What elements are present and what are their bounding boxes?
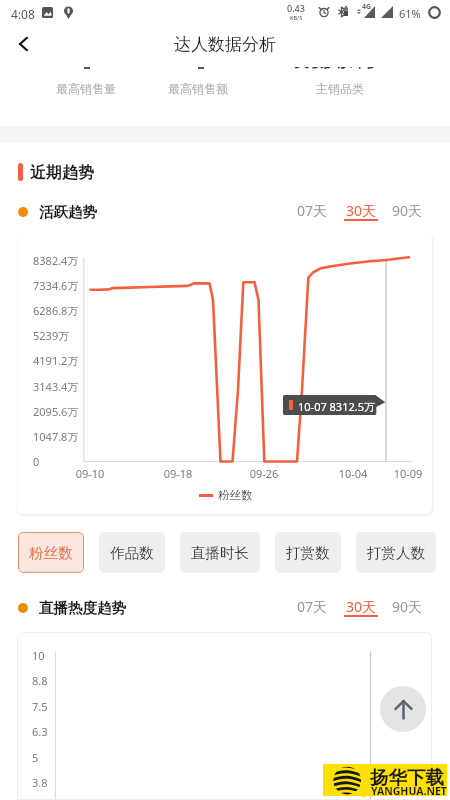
- staticText: 扬华下载: [370, 766, 444, 789]
- staticText: 10: [32, 648, 45, 663]
- staticText: 粉丝数: [29, 544, 73, 562]
- button[interactable]: 打赏人数: [356, 532, 436, 573]
- staticText: 07天: [297, 597, 328, 616]
- staticText: 作品数: [110, 544, 154, 562]
- staticText: 10-04: [328, 466, 378, 481]
- button[interactable]: 30天: [339, 594, 383, 618]
- button[interactable]: 30天: [339, 198, 383, 222]
- staticText: 直播热度趋势: [39, 599, 126, 617]
- staticText: 6.3: [32, 724, 48, 739]
- button[interactable]: 直播时长: [180, 532, 260, 573]
- staticText: 0.43: [287, 2, 305, 14]
- staticText: 4191.2万: [33, 353, 79, 368]
- staticText: 6286.8万: [33, 303, 79, 318]
- staticText: 5: [32, 750, 39, 765]
- staticText: 最高销售量: [56, 81, 116, 96]
- staticText: 09-18: [153, 466, 203, 481]
- staticText: 10-07 8312.5万: [298, 399, 375, 414]
- button[interactable]: Back: [4, 24, 44, 64]
- staticText: 打赏人数: [367, 544, 425, 562]
- button[interactable]: 作品数: [99, 532, 165, 573]
- button[interactable]: 90天: [385, 594, 429, 618]
- staticText: 3143.4万: [33, 379, 79, 394]
- staticText: 3.8: [32, 775, 48, 790]
- staticText: 5239万: [33, 328, 70, 343]
- staticText: 90天: [392, 201, 423, 220]
- staticText: YANGHUA.NET: [371, 784, 447, 798]
- staticText: 09-26: [239, 466, 289, 481]
- staticText: 2095.6万: [33, 404, 79, 419]
- staticText: 1047.8万: [33, 429, 79, 444]
- staticText: 10-09: [383, 466, 432, 481]
- staticText: 8.8: [32, 673, 48, 688]
- staticText: 近期趋势: [30, 163, 94, 183]
- staticText: 09-10: [65, 466, 115, 481]
- button[interactable]: 90天: [385, 198, 429, 222]
- staticText: 0: [33, 454, 40, 469]
- button[interactable]: Scroll to top: [380, 686, 426, 732]
- staticText: 4:08: [11, 6, 35, 22]
- staticText: 达人数据分析: [174, 34, 276, 55]
- staticText: 7334.6万: [33, 278, 79, 293]
- staticText: 90天: [392, 597, 423, 616]
- staticText: 主销品类: [316, 81, 364, 96]
- staticText: 打赏数: [286, 544, 330, 562]
- staticText: 美妆护肤个护: [294, 67, 381, 71]
- staticText: 4G: [362, 2, 372, 12]
- button[interactable]: 07天: [290, 594, 334, 618]
- staticText: 最高销售额: [168, 81, 228, 96]
- button[interactable]: 打赏数: [275, 532, 341, 573]
- button[interactable]: 粉丝数: [18, 532, 84, 573]
- staticText: 61%: [399, 6, 421, 21]
- staticText: 7.5: [32, 699, 48, 714]
- staticText: 活跃趋势: [39, 203, 97, 221]
- staticText: KB/S: [290, 14, 303, 21]
- button[interactable]: 07天: [290, 198, 334, 222]
- staticText: 30天: [346, 597, 377, 616]
- staticText: 07天: [297, 201, 328, 220]
- staticText: 30天: [346, 201, 377, 220]
- staticText: 8382.4万: [33, 253, 79, 268]
- staticText: 粉丝数: [218, 488, 253, 502]
- staticText: 直播时长: [191, 544, 249, 562]
